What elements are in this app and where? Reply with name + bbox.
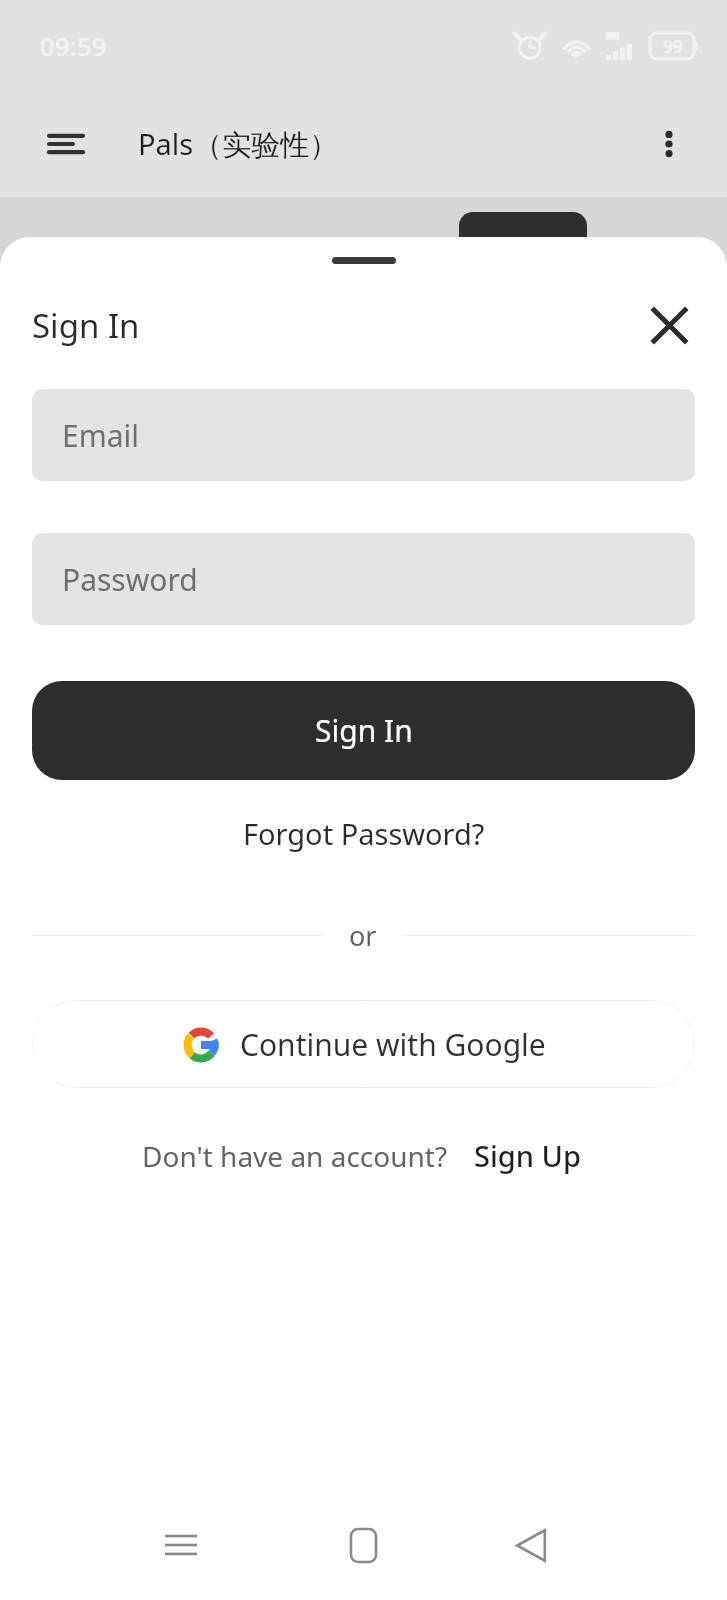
button[interactable]: Sign Up [470,1130,585,1181]
button[interactable]: Recents [121,1490,241,1600]
button[interactable]: More options [639,114,699,174]
button[interactable]: Email [32,389,695,481]
staticText: 09:59 [40,28,107,63]
staticText: Sign Up [474,1136,581,1175]
button[interactable]: Sign In [32,681,695,780]
button[interactable]: Password [32,533,695,625]
staticText: Sign In [315,710,413,751]
staticText: Forgot Password? [243,814,485,853]
staticText: or [349,917,377,954]
button[interactable]: Forgot Password? [225,802,503,865]
button[interactable]: Continue with Google [32,1000,695,1088]
staticText: Email [62,415,140,456]
button[interactable]: Back [471,1490,591,1600]
staticText: Sign In [32,303,140,348]
button[interactable]: Home [303,1490,423,1600]
staticText: 99 [663,35,683,58]
staticText: Continue with Google [240,1024,546,1065]
staticText: Don't have an account? [142,1137,448,1175]
button[interactable]: Menu [36,114,96,174]
staticText: Pals（实验性） [138,124,339,164]
staticText: Password [62,559,198,600]
button[interactable]: Close [641,297,697,353]
